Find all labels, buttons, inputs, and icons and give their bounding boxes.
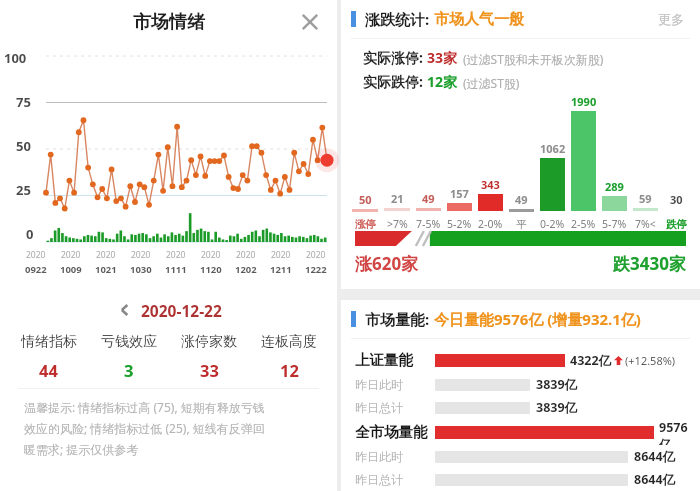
staticText: 1021 bbox=[95, 263, 117, 276]
staticText: 市场情绪 bbox=[133, 11, 205, 34]
staticText: 21 bbox=[391, 191, 404, 206]
staticText: 连板高度 bbox=[261, 333, 317, 351]
staticText: 12家 bbox=[427, 72, 458, 91]
staticText: 2020 bbox=[201, 249, 221, 261]
staticText: 100 bbox=[4, 49, 27, 67]
staticText: 2-0% bbox=[478, 217, 503, 231]
staticText: 1111 bbox=[165, 263, 187, 276]
staticText: 0 bbox=[26, 225, 34, 243]
staticText: 2020 bbox=[96, 249, 116, 261]
staticText: 2020 bbox=[306, 249, 326, 261]
staticText: 49 bbox=[515, 192, 528, 207]
staticText: 平 bbox=[516, 218, 527, 231]
staticText: >7% bbox=[387, 217, 408, 231]
staticText: 157 bbox=[450, 186, 469, 201]
staticText: 全市场量能 bbox=[355, 423, 428, 441]
staticText: 市场人气一般 bbox=[434, 10, 524, 29]
button[interactable]: 全市场量能 bbox=[355, 419, 694, 445]
staticText: 8644亿 bbox=[634, 448, 676, 465]
staticText: 49 bbox=[422, 191, 435, 206]
staticText: 1211 bbox=[270, 263, 292, 276]
staticText: 3839亿 bbox=[536, 399, 578, 416]
staticText: 25 bbox=[16, 181, 31, 199]
staticText: 今日量能9576亿 (增量932.1亿) bbox=[434, 309, 641, 329]
staticText: 2020 bbox=[131, 249, 151, 261]
staticText: 75 bbox=[16, 93, 31, 111]
staticText: 12 bbox=[280, 359, 299, 381]
staticText: 2020 bbox=[26, 249, 46, 261]
staticText: 1062 bbox=[540, 141, 566, 156]
staticText: 7%< bbox=[635, 217, 656, 231]
staticText: 5-7% bbox=[602, 217, 627, 231]
staticText: 2020-12-22 bbox=[141, 300, 222, 321]
staticText: 3839亿 bbox=[536, 376, 578, 393]
staticText: 1120 bbox=[200, 263, 222, 276]
staticText: 昨日此时 bbox=[355, 377, 403, 392]
staticText: 实际涨停: bbox=[363, 48, 427, 67]
staticText: 5-2% bbox=[447, 217, 472, 231]
staticText: 涨停 bbox=[355, 218, 376, 231]
button[interactable]: 情绪指标 bbox=[8, 333, 89, 381]
staticText: (过滤ST股和未开板次新股) bbox=[463, 51, 604, 67]
button[interactable]: 亏钱效应 bbox=[89, 333, 169, 381]
button[interactable]: Previous day bbox=[0, 294, 337, 326]
staticText: 涨停家数 bbox=[181, 333, 237, 351]
staticText: 2020 bbox=[61, 249, 81, 261]
button[interactable]: 更多 bbox=[658, 11, 684, 27]
staticText: 7-5% bbox=[416, 217, 441, 231]
staticText: 实际跌停: bbox=[363, 72, 427, 91]
staticText: 跌停 bbox=[666, 218, 687, 231]
staticText: 2020 bbox=[271, 249, 291, 261]
staticText: 2-5% bbox=[571, 217, 596, 231]
staticText: 1222 bbox=[305, 263, 327, 276]
staticText: 30 bbox=[670, 192, 683, 207]
staticText: 跌3430家 bbox=[613, 252, 686, 275]
staticText: 0922 bbox=[25, 263, 47, 276]
button[interactable]: 上证量能 bbox=[355, 347, 694, 373]
staticText: 50 bbox=[16, 137, 31, 155]
staticText: 2020 bbox=[166, 249, 186, 261]
staticText: 3 bbox=[124, 359, 134, 381]
staticText: 343 bbox=[481, 177, 500, 192]
staticText: 1030 bbox=[130, 263, 152, 276]
staticText: 温馨提示: 情绪指标过高 (75), 短期有释放亏钱 bbox=[24, 399, 265, 415]
button[interactable]: 连板高度 bbox=[249, 333, 329, 381]
staticText: 更多 bbox=[658, 11, 684, 27]
staticText: 2020 bbox=[236, 249, 256, 261]
staticText: 33 bbox=[200, 359, 219, 381]
staticText: 市场量能: bbox=[365, 309, 434, 329]
staticText: 情绪指标 bbox=[21, 333, 77, 351]
staticText: 上证量能 bbox=[355, 351, 413, 369]
staticText: 4322亿 bbox=[570, 352, 612, 369]
staticText: 1009 bbox=[60, 263, 82, 276]
staticText: 昨日总计 bbox=[355, 472, 403, 487]
staticText: (+12.58%) bbox=[625, 353, 676, 368]
staticText: 8644亿 bbox=[634, 471, 676, 488]
staticText: 33家 bbox=[427, 48, 458, 67]
staticText: 289 bbox=[605, 179, 624, 194]
staticText: 1990 bbox=[571, 94, 597, 109]
staticText: (过滤ST股) bbox=[463, 75, 520, 91]
staticText: 涨620家 bbox=[355, 252, 419, 275]
staticText: 昨日此时 bbox=[355, 449, 403, 464]
staticText: 涨跌统计: bbox=[365, 9, 434, 29]
staticText: 59 bbox=[639, 191, 652, 206]
staticText: 暖需求; 提示仅供参考 bbox=[24, 441, 139, 457]
staticText: 9576亿 bbox=[659, 419, 694, 445]
staticText: 效应的风险; 情绪指标过低 (25), 短线有反弹回 bbox=[24, 420, 265, 436]
staticText: 亏钱效应 bbox=[101, 333, 157, 351]
staticText: 0-2% bbox=[540, 217, 565, 231]
staticText: 1202 bbox=[235, 263, 257, 276]
other: Previous day bbox=[115, 300, 135, 320]
button[interactable]: 涨停家数 bbox=[169, 333, 249, 381]
staticText: 44 bbox=[39, 359, 58, 381]
button[interactable]: Close bbox=[295, 7, 325, 37]
staticText: 50 bbox=[359, 192, 372, 207]
staticText: 昨日总计 bbox=[355, 400, 403, 415]
